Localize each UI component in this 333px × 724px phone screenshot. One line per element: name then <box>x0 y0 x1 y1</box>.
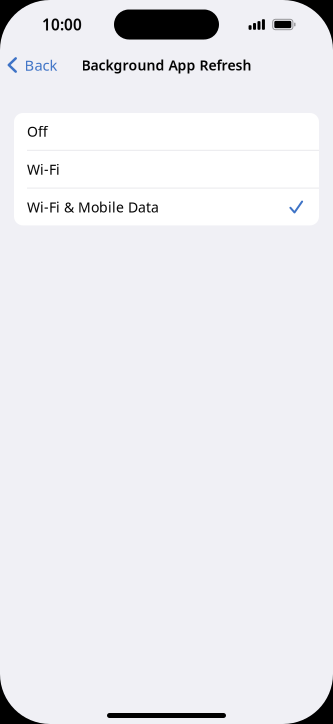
button[interactable]: Off <box>14 113 319 150</box>
staticText: 10:00 <box>42 14 82 35</box>
staticText: Back <box>24 55 57 75</box>
button[interactable]: Wi‑Fi & Mobile Data <box>14 189 319 225</box>
staticText: Wi‑Fi <box>27 160 60 179</box>
staticText: Wi‑Fi & Mobile Data <box>27 197 159 217</box>
button[interactable]: Back <box>0 48 67 82</box>
staticText: Background App Refresh <box>81 55 251 75</box>
staticText: Off <box>27 122 48 141</box>
button[interactable]: Wi‑Fi <box>14 151 319 188</box>
